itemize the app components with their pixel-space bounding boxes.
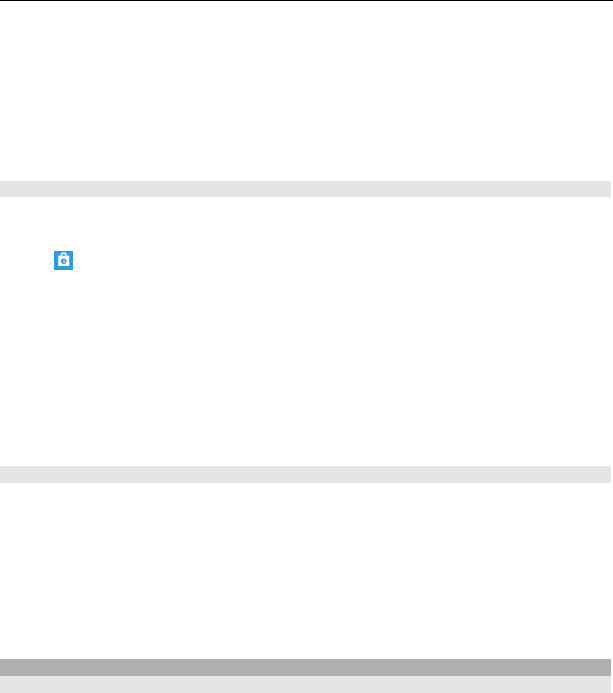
button[interactable]: Shopping bag, 1 item — [0, 244, 613, 277]
button[interactable]: Shopping bag, 1 item — [54, 251, 73, 270]
